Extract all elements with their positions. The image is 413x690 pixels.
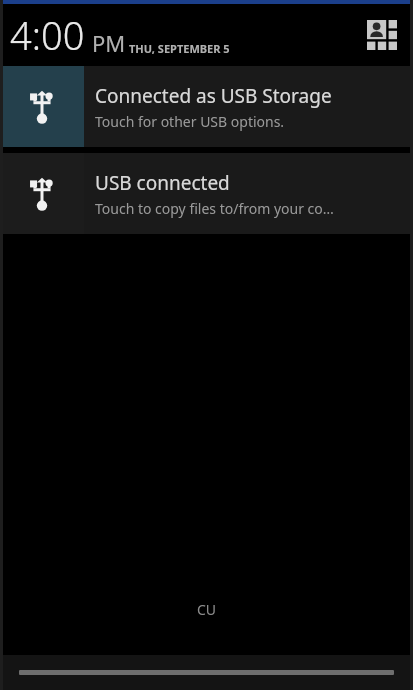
button[interactable]: Close notification shade (0, 655, 413, 690)
button[interactable]: Connected as USB Storage (0, 66, 413, 147)
staticText: 4:00 (10, 9, 85, 61)
staticText: Connected as USB Storage (95, 83, 332, 109)
button[interactable]: USB connected (0, 153, 413, 234)
staticText: USB connected (95, 170, 230, 196)
staticText: CU (197, 600, 217, 619)
staticText: Touch to copy files to/from your co… (95, 199, 334, 218)
staticText: Touch for other USB options. (95, 112, 285, 131)
button[interactable]: Quick settings (362, 15, 402, 55)
staticText: THU, SEPTEMBER 5 (129, 41, 230, 56)
staticText: PM (92, 28, 126, 58)
